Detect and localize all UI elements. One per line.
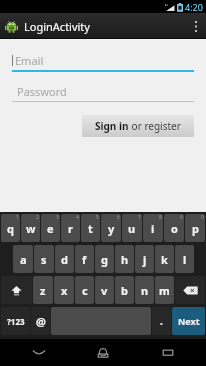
staticText: c xyxy=(82,283,88,298)
staticText: g xyxy=(101,252,108,267)
button[interactable]: q xyxy=(1,214,20,242)
staticText: Password xyxy=(17,84,67,99)
button[interactable]: s xyxy=(34,245,54,273)
staticText: m xyxy=(159,283,170,298)
staticText: l xyxy=(183,252,187,267)
button[interactable]: x xyxy=(54,276,74,304)
button[interactable]: Shift xyxy=(1,276,32,304)
button[interactable]: y xyxy=(101,214,121,242)
button[interactable]: Home xyxy=(77,339,129,366)
staticText: n xyxy=(141,283,149,298)
button[interactable]: l xyxy=(175,245,194,273)
button[interactable]: n xyxy=(135,276,154,304)
staticText: 8 xyxy=(159,214,162,221)
button[interactable]: w xyxy=(21,214,40,242)
button[interactable]: . xyxy=(152,307,171,335)
staticText: e xyxy=(47,221,54,236)
button[interactable]: e xyxy=(41,214,60,242)
button[interactable]: Email xyxy=(12,51,194,72)
button[interactable]: i xyxy=(143,214,163,242)
staticText: t xyxy=(88,221,93,236)
staticText: 1 xyxy=(16,214,19,221)
staticText: a xyxy=(20,252,27,267)
staticText: 9 xyxy=(180,214,183,221)
button[interactable]: ?123 xyxy=(1,307,30,335)
staticText: b xyxy=(121,283,128,298)
button[interactable]: @ xyxy=(31,307,50,335)
button[interactable]: Sign in xyxy=(82,115,194,137)
staticText: s xyxy=(41,252,47,267)
staticText: or register xyxy=(129,119,181,133)
button[interactable]: Recent apps xyxy=(142,339,194,366)
staticText: ?123 xyxy=(7,316,25,327)
staticText: j xyxy=(143,252,147,267)
staticText: . xyxy=(160,314,163,328)
staticText: u xyxy=(128,221,136,236)
staticText: o xyxy=(171,221,178,236)
staticText: 4:20 xyxy=(185,1,203,13)
staticText: k xyxy=(161,252,168,267)
staticText: 4 xyxy=(76,214,79,221)
button[interactable]: t xyxy=(81,214,100,242)
button[interactable]: p xyxy=(185,214,205,242)
staticText: i xyxy=(151,221,155,236)
button[interactable]: m xyxy=(155,276,174,304)
staticText: r xyxy=(68,221,73,236)
button[interactable]: k xyxy=(155,245,174,273)
button[interactable]: u xyxy=(122,214,142,242)
staticText: f xyxy=(82,252,87,267)
staticText: h xyxy=(121,252,129,267)
staticText: Email xyxy=(15,53,44,68)
staticText: z xyxy=(40,283,46,298)
button[interactable]: Next xyxy=(172,307,205,335)
button[interactable]: Back xyxy=(13,339,65,366)
button[interactable]: c xyxy=(75,276,94,304)
staticText: w xyxy=(26,221,36,236)
button[interactable]: h xyxy=(115,245,134,273)
button[interactable]: a xyxy=(13,245,33,273)
button[interactable]: r xyxy=(61,214,80,242)
staticText: 7 xyxy=(138,214,141,221)
staticText: 6 xyxy=(117,214,120,221)
button[interactable]: g xyxy=(95,245,114,273)
button[interactable]: Password xyxy=(12,82,194,102)
button[interactable]: z xyxy=(33,276,53,304)
button[interactable]: j xyxy=(135,245,154,273)
staticText: 0 xyxy=(201,214,204,221)
button[interactable]: More options xyxy=(186,13,206,39)
staticText: @ xyxy=(36,314,46,329)
staticText: q xyxy=(7,221,14,236)
button[interactable]: d xyxy=(55,245,74,273)
button[interactable]: v xyxy=(95,276,114,304)
staticText: v xyxy=(101,283,108,298)
button[interactable]: f xyxy=(75,245,94,273)
staticText: 2 xyxy=(36,214,39,221)
staticText: Next xyxy=(178,315,200,327)
staticText: 3 xyxy=(56,214,59,221)
staticText: p xyxy=(192,221,199,236)
button[interactable]: o xyxy=(164,214,184,242)
staticText: y xyxy=(108,221,115,236)
button[interactable]: b xyxy=(115,276,134,304)
staticText: Sign in xyxy=(95,119,129,133)
staticText: 5 xyxy=(96,214,99,221)
staticText: LoginActivity xyxy=(24,19,90,34)
staticText: d xyxy=(61,252,68,267)
button[interactable]: Delete xyxy=(175,276,205,304)
staticText: x xyxy=(61,283,68,298)
